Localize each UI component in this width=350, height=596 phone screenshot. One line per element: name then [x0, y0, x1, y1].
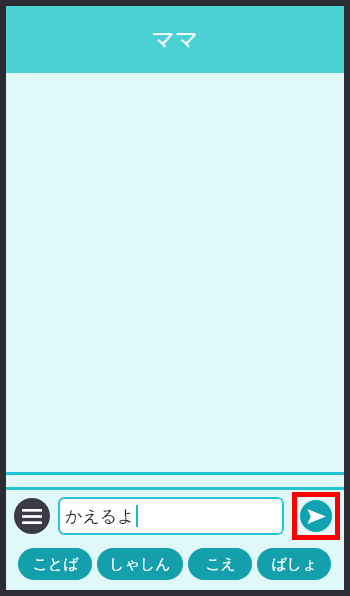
staticText: ママ: [151, 25, 199, 54]
button[interactable]: ことば: [18, 548, 92, 580]
button[interactable]: Send: [297, 497, 335, 535]
staticText: こえ: [205, 555, 236, 574]
button[interactable]: こえ: [188, 548, 252, 580]
staticText: しゃしん: [109, 555, 171, 574]
staticText: ばしょ: [271, 555, 318, 574]
button[interactable]: Menu: [14, 498, 50, 534]
button[interactable]: かえるよ: [58, 497, 284, 535]
staticText: かえるよ: [65, 506, 135, 527]
staticText: ことば: [32, 555, 79, 574]
button[interactable]: しゃしん: [97, 548, 183, 580]
button[interactable]: ばしょ: [257, 548, 331, 580]
